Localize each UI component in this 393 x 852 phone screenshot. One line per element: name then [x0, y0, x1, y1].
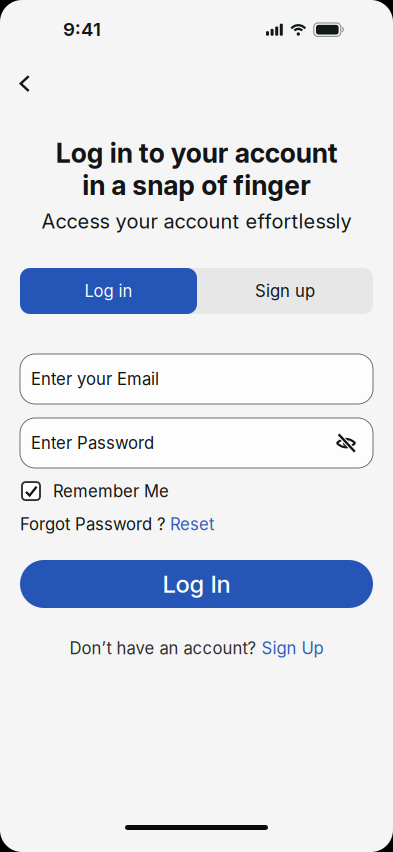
staticText: Forgot Password ? [20, 514, 166, 534]
staticText: Log in [84, 281, 132, 301]
button[interactable]: Sign Up [261, 638, 323, 658]
staticText: 9:41 [63, 18, 101, 41]
button[interactable]: Sign up [197, 268, 373, 314]
staticText: Sign Up [261, 638, 323, 658]
staticText: Remember Me [53, 481, 169, 501]
button[interactable]: Remember Me [22, 477, 169, 505]
button[interactable]: Log In [20, 560, 373, 608]
button[interactable]: Log in [20, 268, 197, 314]
button[interactable]: Reset [170, 514, 214, 534]
staticText: Log In [162, 569, 230, 598]
staticText: Log in to your account in a snap of fing… [55, 137, 337, 201]
staticText: Reset [170, 514, 214, 534]
staticText: Don’t have an account? [69, 638, 256, 658]
button[interactable]: Show password [326, 423, 366, 463]
staticText: Access your account effortlessly [41, 209, 351, 233]
staticText: Enter Password [31, 433, 154, 453]
staticText: Sign up [255, 281, 315, 301]
staticText: Enter your Email [31, 369, 159, 389]
button[interactable]: Back [3, 66, 47, 102]
